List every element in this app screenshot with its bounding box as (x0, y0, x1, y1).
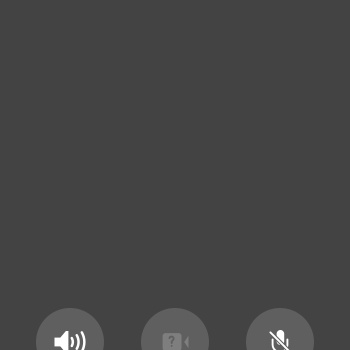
button[interactable]: Camera (141, 308, 209, 350)
button[interactable]: Mute (246, 308, 314, 350)
button[interactable]: Speaker (36, 308, 104, 350)
